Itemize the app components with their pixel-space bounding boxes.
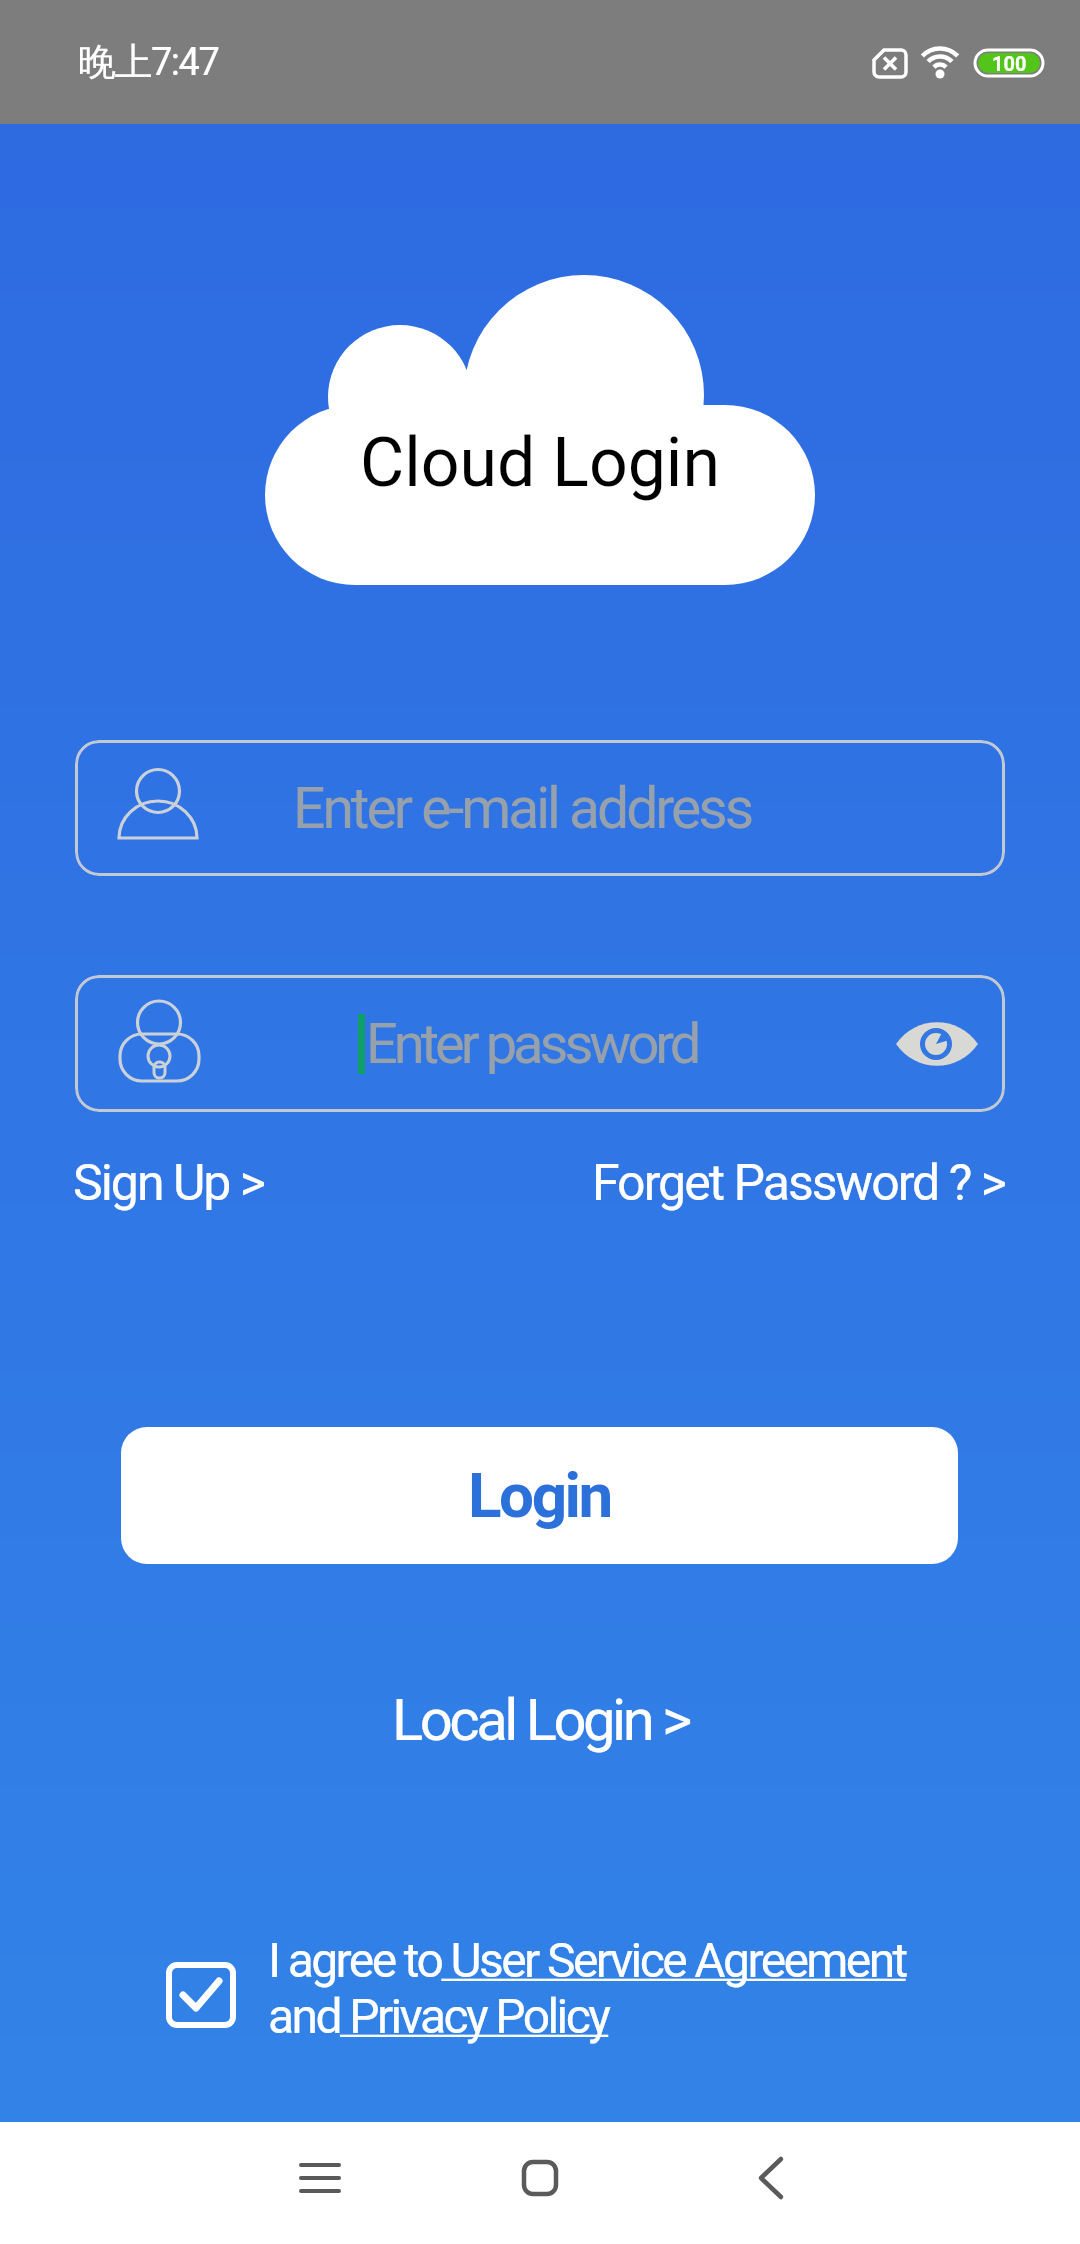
button[interactable]: Enter password xyxy=(75,975,1005,1112)
staticText: 100 xyxy=(992,52,1027,75)
button[interactable]: Sign Up > xyxy=(73,1150,393,1216)
button[interactable] xyxy=(490,2128,590,2228)
button[interactable]: Enter e-mail address xyxy=(75,740,1005,876)
staticText: Cloud Login xyxy=(360,423,720,503)
staticText: Login xyxy=(468,1459,611,1532)
staticText: Sign Up > xyxy=(73,1154,264,1213)
button[interactable]: I agree to User Service Agreement xyxy=(268,1932,915,1988)
button[interactable]: Local Login > xyxy=(392,1686,689,1754)
button[interactable] xyxy=(166,1962,238,2030)
staticText: 晚上7:47 xyxy=(78,38,219,86)
staticText: Forget Password ? > xyxy=(592,1154,1005,1213)
button[interactable]: Forget Password ? > xyxy=(485,1150,1005,1216)
staticText: Enter e-mail address xyxy=(293,775,752,842)
button[interactable] xyxy=(720,2128,820,2228)
staticText: Enter password xyxy=(366,1011,698,1077)
button[interactable] xyxy=(270,2128,370,2228)
button[interactable]: and Privacy Policy xyxy=(268,1988,618,2044)
button[interactable]: Login xyxy=(121,1427,958,1564)
